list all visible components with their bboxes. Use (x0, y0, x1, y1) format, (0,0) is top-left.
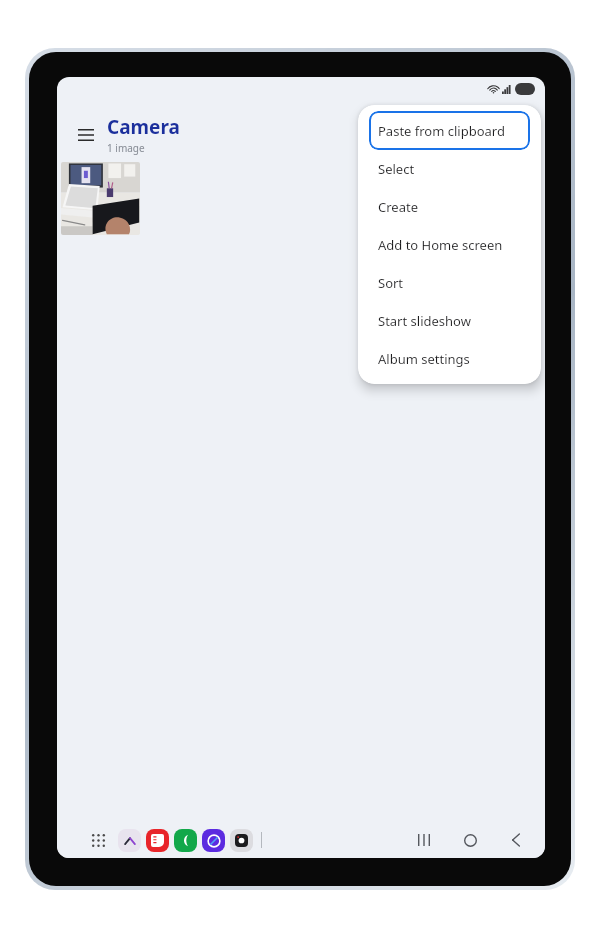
staticText: Add to Home screen (378, 236, 503, 254)
button[interactable]: Album settings (358, 340, 541, 378)
button[interactable]: Gallery (118, 829, 141, 852)
staticText: Start slideshow (378, 312, 471, 330)
button[interactable] (61, 162, 140, 235)
button[interactable]: Home (455, 825, 485, 855)
staticText: 1 image (107, 141, 145, 155)
button[interactable]: Create (358, 188, 541, 226)
button[interactable]: Recent apps (409, 825, 439, 855)
button[interactable]: Add to Home screen (358, 226, 541, 264)
button[interactable]: Select (358, 150, 541, 188)
staticText: Album settings (378, 350, 470, 368)
button[interactable]: Open navigation menu (73, 122, 99, 148)
staticText: Paste from clipboard (378, 122, 505, 140)
staticText: Sort (378, 274, 404, 292)
staticText: Create (378, 198, 418, 216)
button[interactable]: Apps (85, 827, 111, 853)
button[interactable]: Browser (202, 829, 225, 852)
staticText: Select (378, 160, 415, 178)
button[interactable]: Notes (146, 829, 169, 852)
button[interactable]: Paste from clipboard (369, 111, 530, 150)
button[interactable]: Phone (174, 829, 197, 852)
button[interactable]: Back (501, 825, 531, 855)
button[interactable]: Camera (230, 829, 253, 852)
button[interactable]: Sort (358, 264, 541, 302)
button[interactable]: Start slideshow (358, 302, 541, 340)
staticText: Camera (107, 114, 180, 140)
